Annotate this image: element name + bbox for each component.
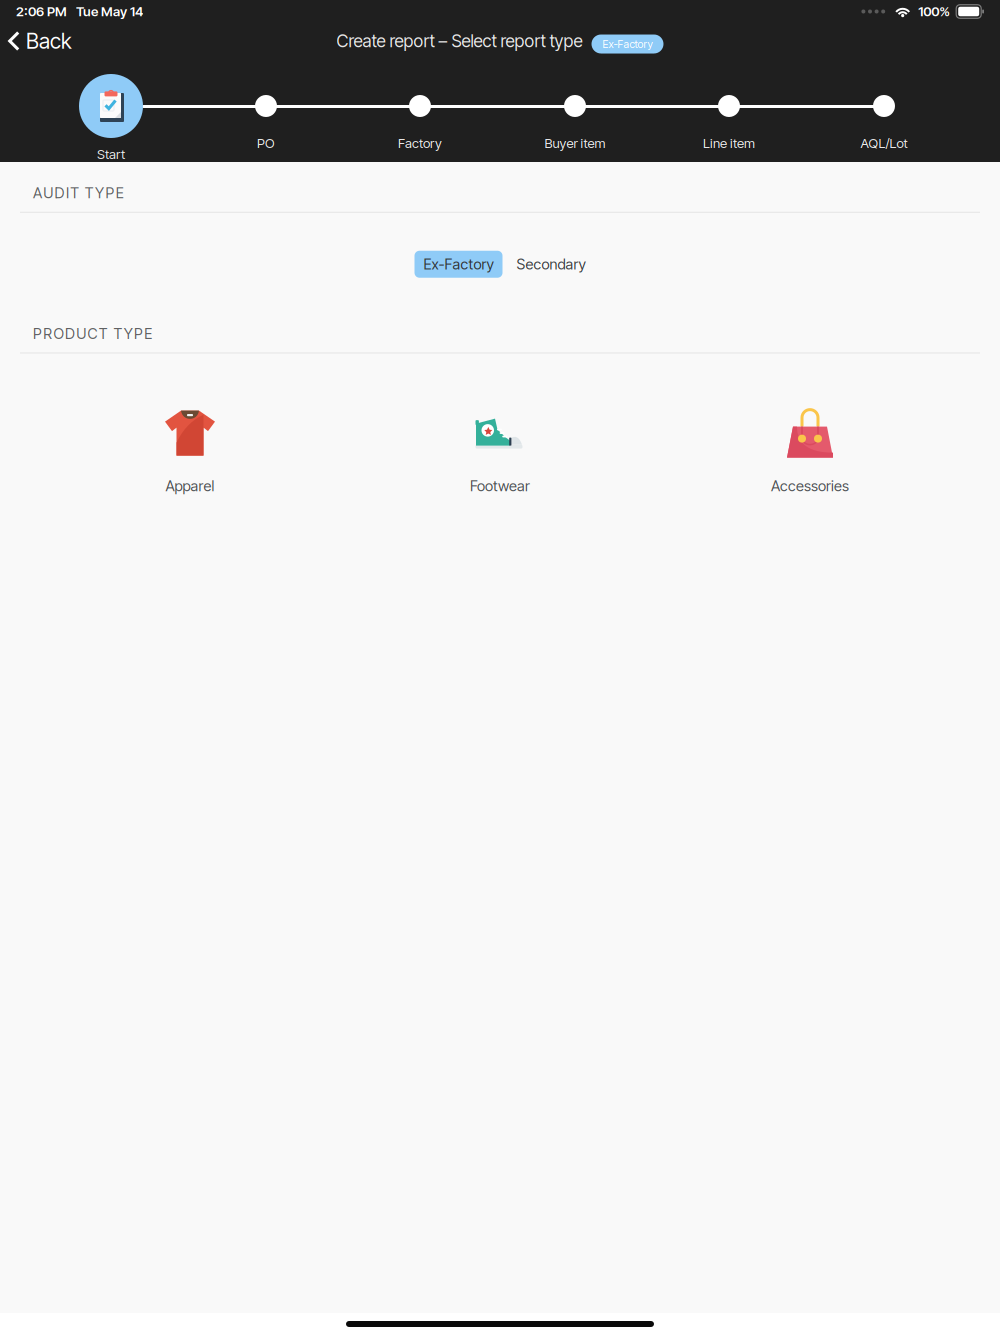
staticText: 100% [918, 3, 950, 19]
staticText: Back [26, 28, 72, 54]
staticText: Buyer item [544, 135, 605, 151]
button[interactable]: Accessories [655, 395, 965, 500]
button[interactable]: Back [8, 23, 72, 59]
staticText: PO [257, 135, 275, 151]
staticText: AUDIT TYPE [33, 184, 124, 202]
staticText: AQL/Lot [860, 135, 907, 151]
button[interactable]: Start [56, 74, 166, 162]
staticText: Create report – Select report type [336, 30, 582, 51]
staticText: Line item [703, 135, 755, 151]
button[interactable]: AQL/Lot [814, 95, 954, 151]
staticText: Ex-Factory [423, 255, 493, 273]
button[interactable]: Buyer item [505, 95, 645, 151]
button[interactable]: Ex-Factory [414, 251, 502, 278]
button[interactable]: Footwear [345, 395, 655, 500]
staticText: Apparel [165, 477, 214, 495]
button[interactable]: PO [196, 95, 336, 151]
staticText: Tue May 14 [76, 3, 143, 19]
staticText: Secondary [516, 255, 585, 273]
button[interactable]: Secondary [516, 251, 585, 278]
staticText: Accessories [771, 477, 849, 495]
button[interactable]: Line item [659, 95, 799, 151]
staticText: 2:06 PM [16, 3, 67, 19]
staticText: Ex-Factory [602, 37, 652, 50]
button[interactable]: Apparel [35, 395, 345, 500]
staticText: Start [97, 146, 125, 162]
staticText: Footwear [470, 477, 530, 495]
staticText: PRODUCT TYPE [33, 325, 152, 342]
button[interactable]: Factory [350, 95, 490, 151]
staticText: Factory [398, 135, 442, 151]
